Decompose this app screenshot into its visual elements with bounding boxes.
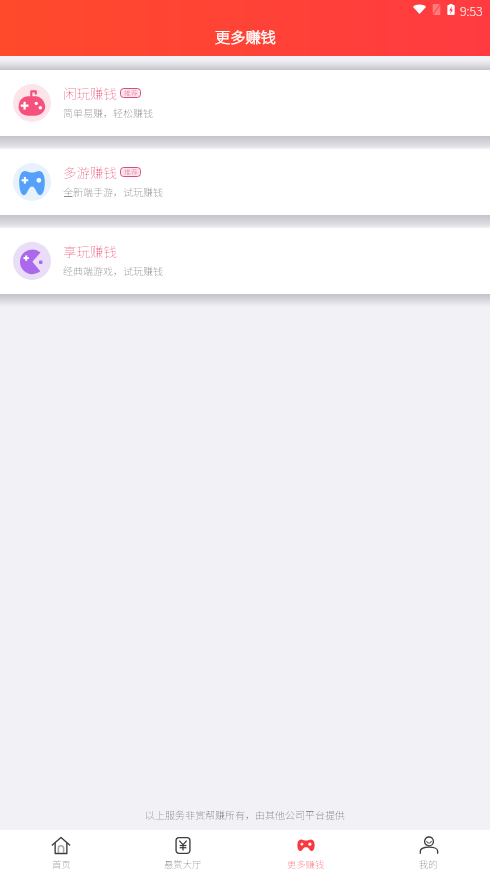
staticText: 更多赚钱 [215,25,276,47]
staticText: 简单易赚，轻松赚钱 [63,105,153,119]
staticText: 我的 [419,857,438,870]
staticText: 享玩赚钱 [63,241,117,261]
staticText: 9:53 [460,1,483,19]
button[interactable]: 首页 [0,833,122,870]
staticText: 首页 [52,857,71,870]
staticText: 以上服务非赏帮赚所有，由其他公司平台提供 [0,807,490,821]
staticText: 经典端游戏，试玩赚钱 [63,263,163,277]
staticText: 多游赚钱 [63,162,117,182]
button[interactable]: 闲玩赚钱 [0,70,490,136]
staticText: 推荐 [124,167,138,177]
button[interactable]: 我的 [367,833,490,870]
staticText: 全新端手游，试玩赚钱 [63,184,163,198]
staticText: 推荐 [124,88,138,98]
staticText: 闲玩赚钱 [63,83,117,103]
button[interactable]: 更多赚钱 [244,833,367,870]
button[interactable]: 享玩赚钱 [0,228,490,294]
button[interactable]: 悬赏大厅 [122,833,244,870]
staticText: 悬赏大厅 [164,857,202,870]
staticText: 更多赚钱 [287,857,325,870]
button[interactable]: 多游赚钱 [0,149,490,215]
